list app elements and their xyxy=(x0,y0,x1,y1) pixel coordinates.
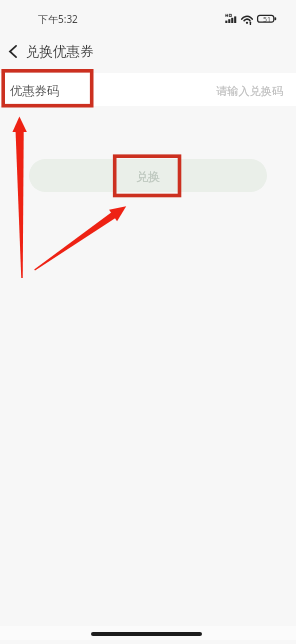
staticText: 下午5:32 xyxy=(38,12,78,26)
staticText: 兑换 xyxy=(136,169,160,184)
staticText: 优惠券码 xyxy=(10,83,60,98)
button[interactable]: Back xyxy=(2,40,24,62)
staticText: 请输入兑换码 xyxy=(216,84,284,98)
staticText: 51 xyxy=(263,15,272,25)
button[interactable]: 优惠券码 xyxy=(0,73,296,106)
button[interactable]: 兑换 xyxy=(29,159,267,192)
staticText: 兑换优惠券 xyxy=(26,43,94,60)
